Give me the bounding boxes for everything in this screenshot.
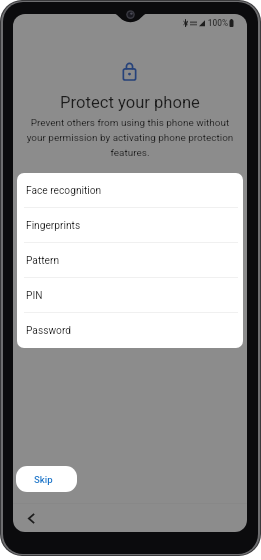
staticText: 100%	[207, 18, 228, 28]
staticText: Fingerprints	[26, 220, 81, 232]
button[interactable]: Skip	[16, 466, 77, 492]
staticText: Prevent others from using this phone wit…	[26, 117, 234, 158]
button[interactable]: Pattern	[17, 243, 243, 278]
staticText: Pattern	[26, 255, 60, 267]
staticText: Password	[26, 325, 71, 337]
button[interactable]: Fingerprints	[17, 208, 243, 243]
button[interactable]: PIN	[17, 278, 243, 313]
staticText: Skip	[34, 474, 53, 485]
button[interactable]: Back	[19, 506, 43, 530]
staticText: PIN	[26, 290, 43, 302]
button[interactable]: Password	[17, 313, 243, 348]
staticText: Protect your phone	[13, 93, 247, 112]
button[interactable]: Face recognition	[17, 173, 243, 208]
staticText: Face recognition	[26, 185, 102, 197]
